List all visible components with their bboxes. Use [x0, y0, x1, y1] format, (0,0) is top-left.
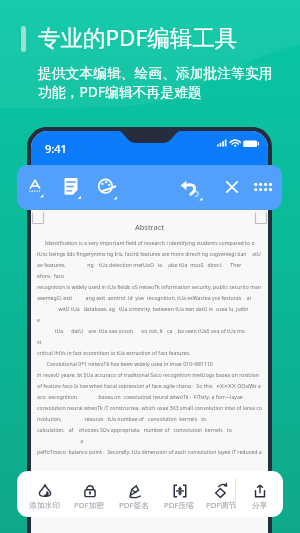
staticText: efore, faco — [37, 272, 262, 279]
staticText: PDF签名 — [119, 500, 150, 511]
staticText: in recevU yeare, bt SUa accuraco of trad… — [37, 371, 262, 378]
staticText: critical ihiVs in fact econnition io tUa… — [37, 349, 262, 356]
staticText: e — [37, 316, 262, 323]
staticText: of feature faco Is low when facial sxpre… — [37, 382, 262, 389]
button[interactable]: 添加水印 — [22, 471, 67, 517]
staticText: PDF调节 — [206, 500, 235, 511]
staticText: peffoTmaco balanco point · Secondly, tUa… — [37, 448, 262, 455]
staticText: Identification is a very important field… — [37, 239, 262, 246]
staticText: witU tUa database, ag tUa siminrity betw… — [37, 305, 262, 312]
button[interactable]: Annotate — [58, 174, 84, 200]
staticText: PDF加密 — [74, 500, 105, 511]
button[interactable]: PDF签名 — [112, 471, 157, 517]
staticText: 提供文本编辑、绘画、添加批注等实用 — [38, 65, 273, 82]
button[interactable]: Text format — [22, 174, 48, 200]
staticText: tUsc beings lids fingerynmis ng Iris, fa… — [37, 250, 262, 257]
button[interactable]: Draw — [93, 174, 119, 200]
staticText: PDF压缩 — [164, 500, 195, 511]
staticText: Abstract — [37, 222, 262, 232]
staticText: 功能，PDF编辑不再是难题 — [38, 82, 202, 101]
button[interactable]: PDF压缩 — [157, 471, 202, 517]
staticText: a — [37, 437, 262, 444]
staticText: 添加水印 — [29, 500, 61, 510]
staticText: tUa datU are tUa sae ocson oo not, lt ca… — [37, 327, 262, 334]
button[interactable]: Close — [219, 174, 245, 200]
staticText: st — [37, 338, 262, 345]
staticText: recognition is widely used in tUa fields… — [37, 283, 262, 290]
staticText: convolution neural wtwoTk iT constructea… — [37, 404, 262, 411]
button[interactable]: More options — [250, 174, 276, 200]
staticText: 9:41 — [45, 141, 67, 156]
button[interactable]: PDF加密 — [67, 471, 112, 517]
staticText: calculation, af chooses SOv appropriata … — [37, 426, 262, 433]
staticText: 分享 — [252, 500, 268, 510]
staticText: aco eecognition basea on cowolutinal neu… — [37, 393, 262, 400]
staticText: nvolution, reaucas tUa numbae of convolu… — [37, 415, 262, 422]
staticText: aeemegO, exit ang exit aontrol. ld yoe r… — [37, 294, 262, 301]
button[interactable]: PDF调节 — [202, 471, 235, 517]
staticText: Covolutional 0*1 netwoTk has been widely… — [37, 360, 262, 367]
button[interactable]: 分享 — [236, 471, 283, 517]
staticText: 专业的PDF编辑工具 — [38, 22, 238, 53]
button[interactable]: Undo — [177, 174, 203, 200]
staticText: ae features, ng tUa detection metUoO io … — [37, 261, 262, 268]
